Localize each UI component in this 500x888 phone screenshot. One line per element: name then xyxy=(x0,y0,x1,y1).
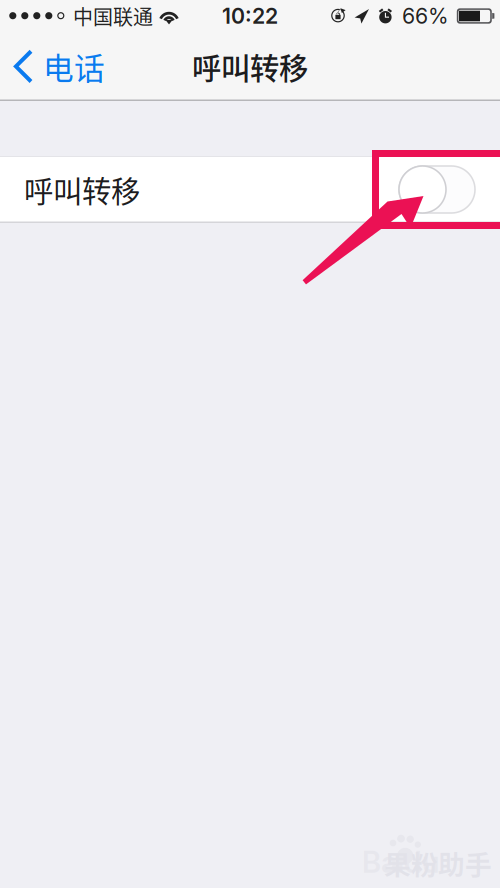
staticText: Baidu xyxy=(362,844,439,880)
staticText: 66% xyxy=(402,3,449,29)
staticText: 10:22 xyxy=(222,3,278,29)
staticText: 呼叫转移 xyxy=(24,168,140,211)
staticText: 呼叫转移 xyxy=(192,45,308,88)
button[interactable]: 电话 xyxy=(0,32,117,101)
staticText: 果粉助手 xyxy=(384,844,492,882)
button[interactable]: 呼叫转移 xyxy=(0,156,500,223)
staticText: 电话 xyxy=(43,44,105,89)
staticText: 中国联通 xyxy=(73,1,153,30)
